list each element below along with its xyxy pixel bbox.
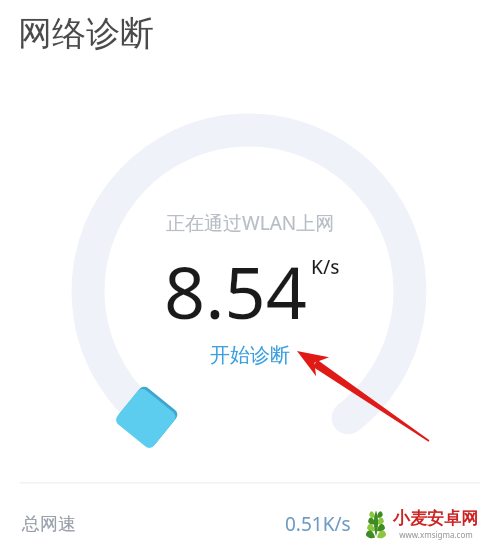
staticText: 小麦安卓网 xyxy=(393,508,478,529)
staticText: 总网速 xyxy=(22,513,76,536)
staticText: 正在通过WLAN上网 xyxy=(166,210,335,236)
staticText: 8.54 xyxy=(164,242,307,340)
staticText: 开始诊断 xyxy=(210,343,290,368)
staticText: www.xmsigma.com xyxy=(399,529,473,540)
button[interactable]: 总网速 xyxy=(0,500,500,548)
staticText: 0.51K/s xyxy=(285,511,351,537)
staticText: K/s xyxy=(311,254,340,280)
staticText: 网络诊断 xyxy=(18,12,154,55)
button[interactable]: 开始诊断 xyxy=(200,340,300,371)
